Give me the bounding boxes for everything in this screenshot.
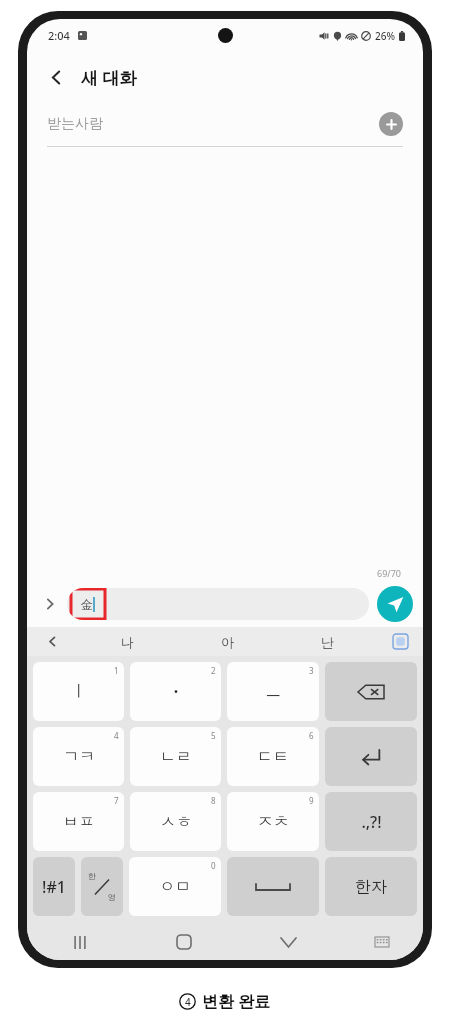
staticText: 0: [211, 860, 216, 871]
button[interactable]: ㅈㅊ: [227, 792, 319, 851]
staticText: 2: [211, 665, 216, 676]
button[interactable]: !#1: [33, 857, 75, 916]
button[interactable]: ㅇㅁ: [129, 857, 221, 916]
staticText: ㄱㅋ: [63, 747, 95, 767]
button[interactable]: .,?!: [325, 792, 417, 851]
staticText: 8: [211, 795, 216, 806]
button[interactable]: BACKSPACE: [325, 662, 417, 721]
staticText: ㅅㅎ: [160, 812, 192, 832]
staticText: 4: [185, 995, 191, 1009]
button[interactable]: Add recipient: [379, 112, 403, 136]
button[interactable]: ·: [130, 662, 221, 721]
button[interactable]: ENTER: [325, 727, 417, 786]
staticText: ㄴㄹ: [160, 747, 192, 767]
button[interactable]: ㄷㅌ: [227, 727, 319, 786]
staticText: 26%: [375, 29, 395, 43]
button[interactable]: ㄱㅋ: [33, 727, 124, 786]
staticText: 새 대화: [81, 66, 137, 89]
button[interactable]: HANYEONG: [81, 857, 123, 916]
staticText: 2:04: [48, 28, 70, 43]
staticText: 난: [321, 634, 334, 650]
button[interactable]: Back: [37, 58, 75, 96]
staticText: 5: [211, 730, 216, 741]
staticText: 3: [309, 665, 314, 676]
staticText: !#1: [42, 876, 66, 898]
staticText: 받는사람: [47, 115, 379, 133]
button[interactable]: ㅣ: [33, 662, 124, 721]
button[interactable]: 아: [177, 627, 277, 656]
button[interactable]: Hide keyboard: [236, 924, 340, 960]
button[interactable]: ㅡ: [227, 662, 319, 721]
button[interactable]: 金: [67, 588, 369, 620]
staticText: ㅂㅍ: [63, 812, 95, 832]
staticText: 7: [114, 795, 119, 806]
staticText: ㅇㅁ: [159, 877, 191, 897]
staticText: 1: [114, 665, 119, 676]
staticText: 9: [309, 795, 314, 806]
button[interactable]: SPACE: [227, 857, 319, 916]
staticText: ㅡ: [265, 682, 281, 702]
staticText: 한: [88, 871, 96, 881]
staticText: ㄷㅌ: [257, 747, 289, 767]
button[interactable]: 한자: [325, 857, 417, 916]
button[interactable]: Previous suggestions: [27, 627, 77, 656]
staticText: ㅈㅊ: [257, 812, 289, 832]
staticText: ㅣ: [71, 682, 87, 702]
staticText: 변환 완료: [202, 990, 271, 1012]
button[interactable]: Recents: [27, 924, 132, 960]
button[interactable]: Keyboard settings: [340, 924, 423, 960]
staticText: 나: [121, 634, 134, 650]
button[interactable]: Send: [377, 586, 413, 622]
staticText: 한자: [355, 877, 387, 897]
button[interactable]: Stickers: [377, 627, 423, 656]
button[interactable]: Home: [132, 924, 236, 960]
staticText: 영: [108, 892, 116, 902]
button[interactable]: ㅂㅍ: [33, 792, 124, 851]
button[interactable]: 나: [77, 627, 177, 656]
staticText: .,?!: [361, 811, 382, 833]
button[interactable]: Expand: [37, 591, 63, 617]
staticText: 아: [221, 634, 234, 650]
staticText: 4: [114, 730, 119, 741]
button[interactable]: ㄴㄹ: [130, 727, 221, 786]
button[interactable]: ㅅㅎ: [130, 792, 221, 851]
button[interactable]: 난: [277, 627, 377, 656]
staticText: 金: [81, 597, 93, 612]
staticText: ·: [173, 678, 179, 705]
staticText: 6: [309, 730, 314, 741]
staticText: 69/70: [377, 567, 401, 579]
